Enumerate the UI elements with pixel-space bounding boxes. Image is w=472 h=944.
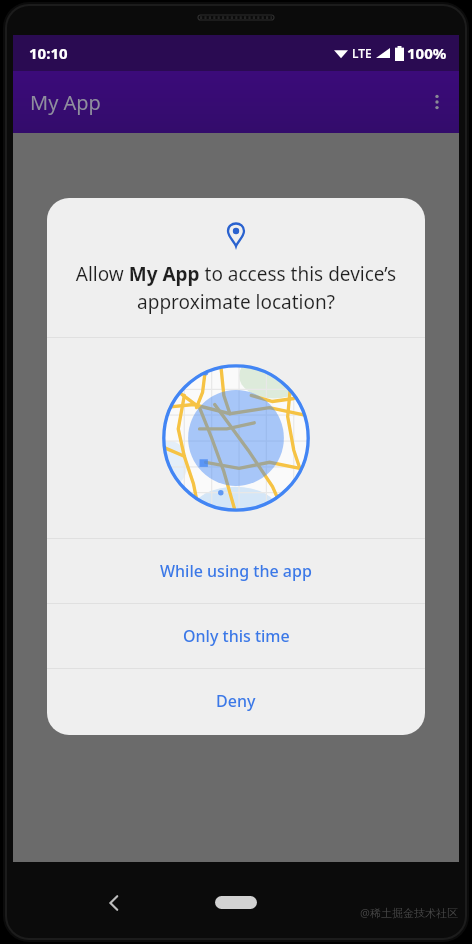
staticText: Only this time: [183, 625, 290, 647]
staticText: @稀土掘金技术社区: [360, 905, 458, 920]
staticText: While using the app: [160, 560, 312, 582]
button[interactable]: Only this time: [47, 604, 425, 668]
button[interactable]: Back: [92, 881, 136, 925]
staticText: Deny: [216, 690, 256, 712]
staticText: LTE: [352, 45, 372, 61]
button[interactable]: More options: [415, 80, 459, 124]
staticText: 10:10: [29, 43, 68, 63]
button[interactable]: While using the app: [47, 539, 425, 603]
staticText: My App: [30, 89, 101, 116]
button[interactable]: Deny: [47, 669, 425, 733]
staticText: 100%: [407, 43, 447, 63]
button[interactable]: Home: [201, 885, 271, 919]
staticText: Allow My App to access this device’s app…: [67, 261, 405, 315]
